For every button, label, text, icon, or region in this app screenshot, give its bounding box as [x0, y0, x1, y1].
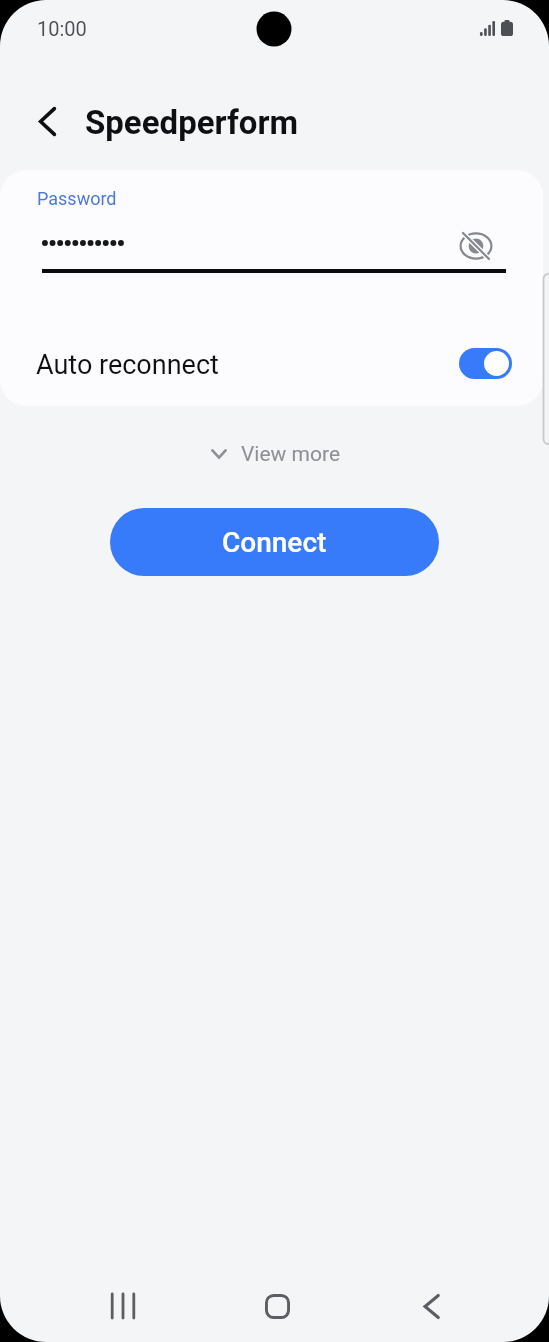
button[interactable]: Recent apps [78, 1261, 168, 1342]
staticText: Auto reconnect [36, 349, 219, 381]
button[interactable]: Auto reconnect [0, 334, 543, 392]
button[interactable]: Password field [42, 220, 446, 273]
button[interactable]: Show password [452, 222, 500, 270]
staticText: Connect [222, 526, 327, 559]
button[interactable]: Back [386, 1261, 476, 1342]
staticText: View more [241, 442, 341, 467]
staticText: Speedperform [85, 103, 299, 142]
staticText: 10:00 [37, 17, 87, 40]
button[interactable]: Auto reconnect [459, 348, 512, 379]
button[interactable]: Connect [110, 508, 439, 576]
button[interactable]: Navigate up [22, 96, 72, 146]
button[interactable]: View more [202, 436, 341, 472]
staticText: Password [37, 188, 117, 209]
button[interactable]: Home [232, 1261, 322, 1342]
